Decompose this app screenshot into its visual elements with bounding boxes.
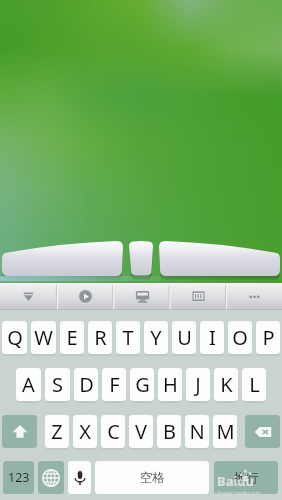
button[interactable]: C: [101, 415, 125, 448]
button[interactable]: L: [242, 368, 266, 401]
staticText: C: [107, 418, 120, 445]
button[interactable]: 空格: [95, 461, 209, 494]
button[interactable]: More options: [226, 283, 282, 310]
staticText: T: [122, 324, 134, 351]
staticText: M: [216, 418, 235, 445]
staticText: A: [22, 371, 35, 398]
button[interactable]: A: [16, 368, 41, 401]
staticText: Baidu: [217, 472, 254, 490]
button[interactable]: Display: [114, 283, 170, 310]
button[interactable]: W: [31, 321, 56, 354]
button[interactable]: F: [102, 368, 126, 401]
staticText: L: [249, 371, 260, 398]
button[interactable]: M: [213, 415, 237, 448]
button[interactable]: E: [60, 321, 84, 354]
button[interactable]: I: [200, 321, 224, 354]
staticText: K: [220, 371, 233, 398]
button[interactable]: 换行: [214, 461, 278, 494]
button[interactable]: Backspace: [245, 415, 280, 448]
button[interactable]: S: [45, 368, 70, 401]
staticText: P: [262, 324, 275, 351]
button[interactable]: K: [214, 368, 238, 401]
staticText: 123: [8, 469, 30, 486]
button[interactable]: H: [158, 368, 182, 401]
button[interactable]: V: [129, 415, 153, 448]
button[interactable]: Voice input: [68, 461, 91, 494]
button[interactable]: X: [73, 415, 97, 448]
button[interactable]: Y: [144, 321, 168, 354]
staticText: Z: [51, 418, 63, 445]
button[interactable]: T: [116, 321, 140, 354]
staticText: J: [195, 371, 201, 398]
button[interactable]: Hide keyboard: [0, 283, 57, 310]
button[interactable]: J: [186, 368, 210, 401]
staticText: jingyan.baidu.com: [217, 490, 261, 497]
staticText: 空格: [140, 470, 165, 486]
button[interactable]: D: [74, 368, 98, 401]
staticText: N: [189, 418, 205, 445]
staticText: Y: [150, 324, 162, 351]
staticText: V: [135, 418, 147, 445]
staticText: D: [79, 371, 94, 398]
button[interactable]: O: [228, 321, 252, 354]
staticText: W: [34, 324, 53, 351]
button[interactable]: Z: [45, 415, 69, 448]
button[interactable]: Shift: [2, 415, 37, 448]
button[interactable]: B: [157, 415, 181, 448]
button[interactable]: U: [172, 321, 196, 354]
staticText: Q: [7, 324, 23, 351]
button[interactable]: N: [185, 415, 209, 448]
button[interactable]: Numbers: [170, 283, 226, 310]
button[interactable]: Change input language: [38, 461, 64, 494]
button[interactable]: Q: [2, 321, 27, 354]
staticText: U: [177, 324, 192, 351]
button[interactable]: R: [88, 321, 112, 354]
staticText: R: [94, 324, 107, 351]
staticText: B: [163, 418, 176, 445]
staticText: F: [109, 371, 120, 398]
staticText: I: [209, 324, 216, 351]
button[interactable]: Voice input: [57, 283, 114, 310]
button[interactable]: 123: [3, 461, 34, 494]
staticText: O: [232, 324, 248, 351]
staticText: S: [52, 371, 63, 398]
staticText: G: [135, 371, 150, 398]
staticText: H: [163, 371, 178, 398]
button[interactable]: P: [256, 321, 280, 354]
staticText: X: [79, 418, 91, 445]
staticText: 换行: [234, 470, 259, 486]
staticText: E: [66, 324, 78, 351]
button[interactable]: G: [130, 368, 154, 401]
